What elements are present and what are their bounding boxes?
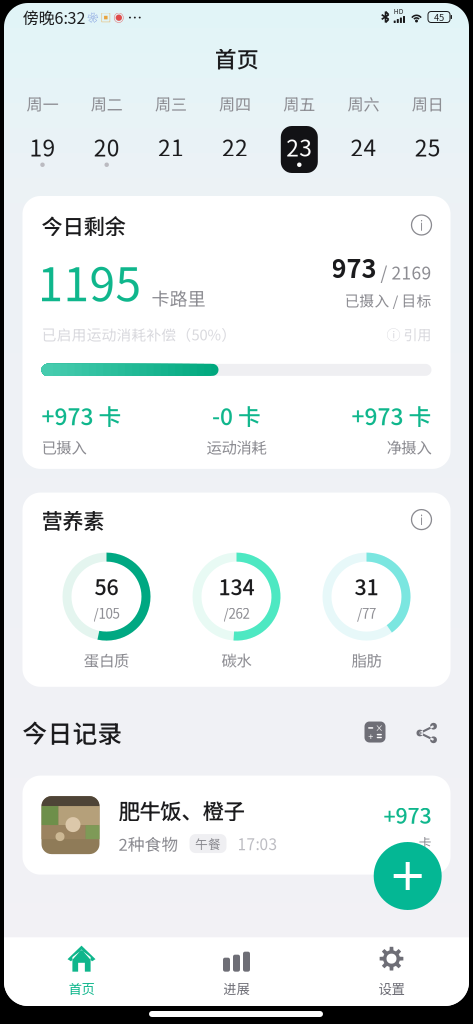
staticText: 午餐 (195, 834, 221, 853)
staticText: 运动消耗 (206, 436, 266, 458)
staticText: /77 (357, 603, 376, 623)
staticText: + (368, 729, 373, 743)
staticText: 周六 (347, 92, 379, 115)
staticText: 周日 (412, 92, 444, 115)
staticText: 20 (94, 130, 120, 163)
button[interactable]: 分享 (411, 718, 441, 748)
button[interactable]: 进展 (159, 937, 314, 1006)
button[interactable]: 周三 (139, 95, 203, 177)
button[interactable]: 添加记录 (374, 842, 442, 910)
staticText: 134 (218, 570, 254, 601)
staticText: 2种食物 (118, 831, 178, 856)
button[interactable]: 周六 (331, 95, 396, 177)
staticText: 今日记录 (22, 714, 122, 750)
staticText: 22 (222, 130, 248, 163)
staticText: ▣ (98, 9, 111, 25)
staticText: 傍晚6:32 (22, 5, 85, 29)
staticText: 24 (350, 130, 376, 163)
staticText: 今日剩余 (41, 210, 125, 240)
staticText: 23 (286, 130, 312, 163)
staticText: 已摄入 / 目标 (344, 289, 431, 311)
staticText: 25 (415, 130, 441, 163)
staticText: 周三 (155, 92, 187, 115)
staticText: ⓘ 引用 (386, 324, 431, 344)
staticText: /262 (223, 603, 249, 623)
staticText: i (419, 510, 423, 529)
staticText: ❀ (85, 9, 98, 25)
staticText: 碳水 (221, 649, 251, 671)
staticText: ⋯ (124, 6, 142, 28)
staticText: +973 卡 (351, 399, 431, 432)
staticText: 31 (354, 570, 378, 601)
button[interactable]: 周一 (10, 95, 75, 177)
button[interactable]: 周五 (267, 95, 331, 177)
button[interactable]: 说明 (411, 510, 431, 530)
button[interactable]: 周四 (203, 95, 267, 177)
staticText: 进展 (223, 979, 249, 998)
staticText: 19 (29, 130, 55, 163)
staticText: 肥牛饭、橙子 (118, 795, 244, 825)
staticText: 设置 (378, 979, 404, 998)
staticText: ◉ (111, 9, 124, 25)
staticText: 已启用运动消耗补偿（50%） (41, 324, 236, 345)
button[interactable]: 设置 (314, 937, 469, 1006)
staticText: / 2169 (376, 259, 431, 284)
staticText: 首页 (68, 979, 94, 998)
button[interactable]: 周二 (75, 95, 139, 177)
button[interactable]: 首页 (4, 937, 159, 1006)
button[interactable]: 肥牛饭、橙子 (22, 776, 450, 875)
staticText: 卡路里 (151, 284, 205, 311)
staticText: 周一 (26, 92, 58, 115)
staticText: 45 (434, 10, 444, 24)
staticText: 营养素 (41, 504, 104, 535)
staticText: 1195 (37, 248, 141, 315)
staticText: 蛋白质 (84, 649, 129, 671)
staticText: × (375, 722, 383, 734)
staticText: 21 (158, 130, 184, 163)
button[interactable]: 说明 (411, 215, 431, 235)
staticText: i (419, 215, 423, 235)
button[interactable]: 周日 (396, 95, 460, 177)
staticText: 卡 (418, 833, 431, 851)
staticText: -0 卡 (212, 399, 261, 432)
staticText: /105 (93, 603, 119, 623)
staticText: HD (394, 6, 404, 16)
staticText: 首页 (214, 42, 258, 74)
staticText: +973 卡 (41, 399, 121, 432)
staticText: 净摄入 (386, 436, 431, 458)
staticText: 脂肪 (351, 649, 381, 671)
staticText: 周五 (283, 92, 315, 115)
button[interactable]: 计算器 (359, 716, 390, 747)
staticText: 已摄入 (41, 436, 86, 458)
staticText: 周二 (91, 92, 123, 115)
staticText: 17:03 (237, 832, 277, 855)
staticText: 973 (331, 249, 376, 285)
staticText: 56 (94, 570, 118, 601)
staticText: +973 (383, 799, 431, 830)
staticText: 周四 (219, 92, 251, 115)
